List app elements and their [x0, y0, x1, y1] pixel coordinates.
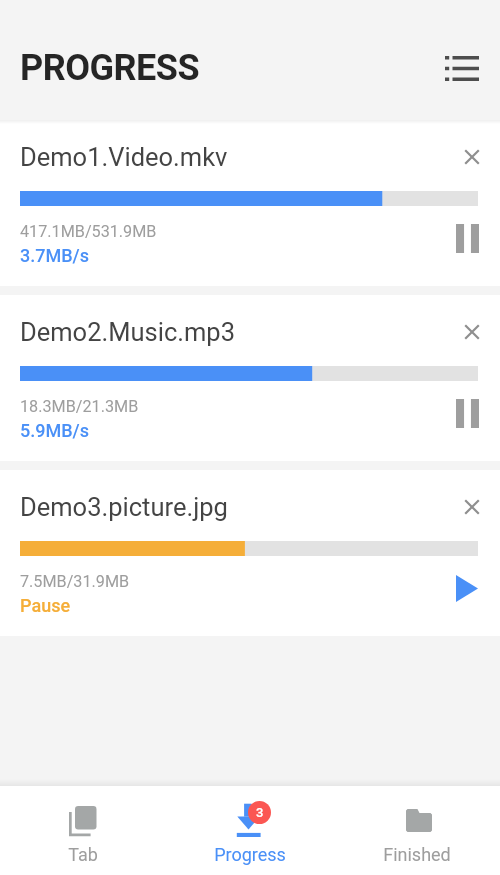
staticText: 18.3MB/21.3MB: [20, 397, 139, 416]
button[interactable]: Resume download: [443, 564, 491, 612]
button[interactable]: Demo1.Video.mkv: [0, 120, 500, 286]
staticText: Tab: [68, 844, 98, 865]
staticText: Demo3.picture.jpg: [20, 492, 228, 522]
button[interactable]: Tab: [0, 786, 166, 875]
staticText: Finished: [383, 844, 451, 865]
button[interactable]: Cancel download: [452, 312, 492, 352]
button[interactable]: 3: [166, 786, 333, 875]
button[interactable]: Pause download: [443, 389, 491, 437]
button[interactable]: Cancel download: [452, 487, 492, 527]
staticText: 417.1MB/531.9MB: [20, 222, 157, 241]
staticText: 3: [256, 805, 264, 820]
staticText: PROGRESS: [20, 47, 200, 89]
staticText: Demo1.Video.mkv: [20, 142, 228, 172]
button[interactable]: Demo2.Music.mp3: [0, 295, 500, 461]
staticText: Progress: [214, 844, 286, 865]
button[interactable]: Cancel download: [452, 137, 492, 177]
staticText: 5.9MB/s: [20, 420, 90, 441]
button[interactable]: Demo3.picture.jpg: [0, 470, 500, 636]
staticText: Pause: [20, 595, 71, 616]
button[interactable]: List view: [435, 41, 489, 95]
button[interactable]: Finished: [333, 786, 500, 875]
staticText: 7.5MB/31.9MB: [20, 572, 130, 591]
button[interactable]: Pause download: [443, 214, 491, 262]
staticText: Demo2.Music.mp3: [20, 317, 235, 347]
staticText: 3.7MB/s: [20, 245, 90, 266]
